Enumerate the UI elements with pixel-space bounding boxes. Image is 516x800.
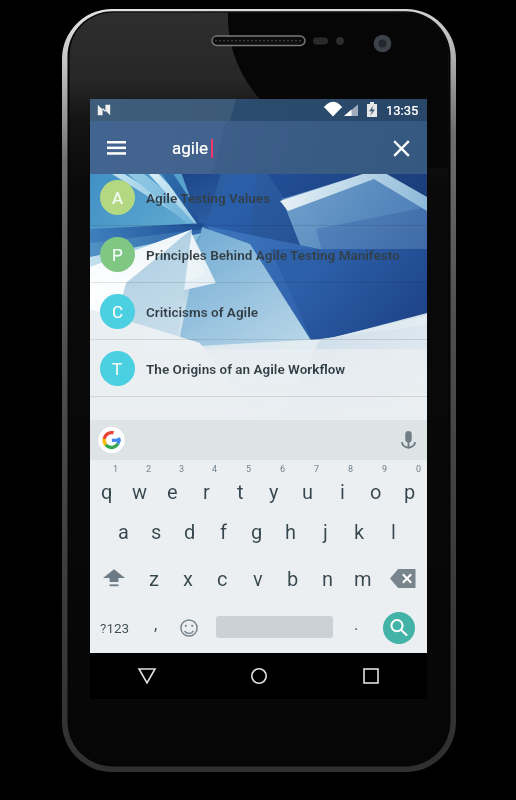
staticText: p xyxy=(404,480,416,503)
button[interactable]: b xyxy=(275,555,310,601)
button[interactable]: s xyxy=(140,509,173,553)
button[interactable]: . xyxy=(342,603,370,653)
button[interactable]: k xyxy=(342,509,376,553)
staticText: k xyxy=(354,520,365,543)
staticText: agile xyxy=(172,138,209,158)
button[interactable]: Search xyxy=(383,612,415,644)
staticText: 5 xyxy=(246,464,252,475)
staticText: 3 xyxy=(179,464,185,475)
button[interactable]: c xyxy=(205,555,240,601)
button[interactable]: C xyxy=(90,283,427,340)
staticText: 4 xyxy=(212,464,218,475)
staticText: z xyxy=(149,567,159,590)
button[interactable]: r xyxy=(189,464,223,508)
button[interactable]: u xyxy=(291,464,325,508)
button[interactable]: y xyxy=(257,464,291,508)
button[interactable]: a xyxy=(107,509,140,553)
staticText: a xyxy=(118,520,129,543)
staticText: Agile Testing Values xyxy=(146,190,271,206)
button[interactable]: v xyxy=(240,555,275,601)
staticText: d xyxy=(184,520,196,543)
staticText: w xyxy=(132,480,148,503)
button[interactable]: Clear search xyxy=(384,131,418,165)
button[interactable]: f xyxy=(206,509,240,553)
button[interactable]: i xyxy=(325,464,359,508)
button[interactable]: Navigation menu xyxy=(97,129,135,167)
button[interactable]: l xyxy=(376,509,410,553)
staticText: 13:35 xyxy=(386,103,419,118)
button[interactable]: A xyxy=(90,169,427,226)
button[interactable]: j xyxy=(308,509,342,553)
staticText: o xyxy=(370,480,382,503)
button[interactable]: q xyxy=(90,464,123,508)
staticText: P xyxy=(112,245,123,265)
staticText: The Origins of an Agile Workflow xyxy=(146,361,346,377)
staticText: 0 xyxy=(416,464,422,475)
staticText: v xyxy=(253,567,263,590)
button[interactable]: n xyxy=(310,555,345,601)
staticText: 2 xyxy=(146,464,152,475)
staticText: r xyxy=(203,480,210,503)
staticText: , xyxy=(154,614,158,634)
staticText: j xyxy=(323,520,328,543)
button[interactable]: w xyxy=(123,464,156,508)
button[interactable]: Home xyxy=(203,653,315,699)
button[interactable]: ?123 xyxy=(94,603,136,653)
staticText: u xyxy=(302,480,314,503)
staticText: l xyxy=(391,520,396,543)
button[interactable]: Shift xyxy=(90,555,137,601)
staticText: ?123 xyxy=(100,620,130,636)
staticText: s xyxy=(151,520,162,543)
staticText: y xyxy=(269,480,279,503)
staticText: T xyxy=(112,359,123,379)
staticText: m xyxy=(354,567,372,590)
staticText: Principles Behind Agile Testing Manifest… xyxy=(146,247,400,263)
staticText: x xyxy=(183,567,193,590)
button[interactable]: Back xyxy=(90,653,203,699)
button[interactable]: g xyxy=(240,509,274,553)
button[interactable]: h xyxy=(274,509,308,553)
staticText: e xyxy=(167,480,178,503)
staticText: 9 xyxy=(382,464,388,475)
staticText: c xyxy=(217,567,228,590)
staticText: g xyxy=(251,520,263,543)
staticText: 8 xyxy=(348,464,354,475)
staticText: f xyxy=(220,520,227,543)
staticText: 7 xyxy=(314,464,320,475)
button[interactable]: x xyxy=(171,555,205,601)
staticText: 6 xyxy=(280,464,286,475)
button[interactable]: z xyxy=(137,555,171,601)
button[interactable]: Backspace xyxy=(380,555,427,601)
button[interactable]: Recent apps xyxy=(315,653,427,699)
staticText: i xyxy=(340,480,345,503)
staticText: h xyxy=(285,520,297,543)
staticText: b xyxy=(287,567,299,590)
staticText: n xyxy=(322,567,334,590)
staticText: t xyxy=(237,480,244,503)
button[interactable]: P xyxy=(90,226,427,283)
staticText: C xyxy=(112,302,124,322)
button[interactable]: e xyxy=(156,464,189,508)
button[interactable]: o xyxy=(359,464,393,508)
staticText: A xyxy=(112,188,124,208)
button[interactable]: , xyxy=(142,603,170,653)
button[interactable]: p xyxy=(393,464,427,508)
button[interactable]: m xyxy=(345,555,380,601)
button[interactable]: d xyxy=(173,509,206,553)
button[interactable]: Emoji xyxy=(172,603,206,653)
button[interactable]: t xyxy=(223,464,257,508)
staticText: . xyxy=(354,614,359,634)
staticText: q xyxy=(101,480,113,503)
staticText: 1 xyxy=(113,464,119,475)
staticText: Criticisms of Agile xyxy=(146,304,259,320)
button[interactable]: T xyxy=(90,340,427,397)
